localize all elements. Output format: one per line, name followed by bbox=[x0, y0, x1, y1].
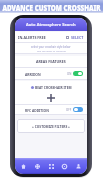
button[interactable]: RFC ADDITION bbox=[15, 105, 87, 114]
staticText: ON bbox=[67, 72, 72, 76]
button[interactable]: Settings bbox=[59, 161, 70, 172]
staticText: RFC ADDITION bbox=[25, 108, 49, 112]
staticText: select your crosshair style below bbox=[31, 45, 71, 49]
staticText: and tap apply to continue bbox=[37, 49, 66, 52]
staticText: BEAT CROSSHAIR ITEM bbox=[35, 85, 72, 89]
staticText: SELECT bbox=[71, 35, 84, 40]
staticText: + CUSTOMIZE FILTERS + bbox=[32, 124, 70, 128]
button[interactable]: Crosshair preview bbox=[15, 92, 87, 104]
staticText: AREAS FEATURES bbox=[36, 59, 66, 64]
staticText: OFF bbox=[66, 108, 72, 112]
button[interactable]: select your crosshair style below bbox=[15, 43, 87, 53]
other: Crosshair preview bbox=[47, 94, 55, 102]
staticText: IN-ALERTS FREE bbox=[18, 35, 46, 40]
button[interactable]: + CUSTOMIZE FILTERS + bbox=[17, 119, 85, 133]
staticText: ARRIDON bbox=[25, 72, 41, 76]
button[interactable]: IN-ALERTS FREE bbox=[15, 32, 87, 42]
staticText: ADVANCE CUSTOM CROSSHAIR bbox=[2, 1, 101, 13]
button[interactable]: AREAS FEATURES bbox=[15, 56, 87, 67]
button[interactable]: Apps bbox=[46, 161, 57, 172]
button[interactable]: Home bbox=[18, 161, 29, 172]
button[interactable]: Crosshair bbox=[32, 161, 43, 172]
button[interactable]: ARRIDON bbox=[15, 68, 87, 79]
button[interactable]: Profile bbox=[73, 161, 84, 172]
staticText: Auto Atmosphere Search bbox=[26, 22, 76, 27]
button[interactable]: BEAT CROSSHAIR ITEM bbox=[15, 81, 87, 92]
